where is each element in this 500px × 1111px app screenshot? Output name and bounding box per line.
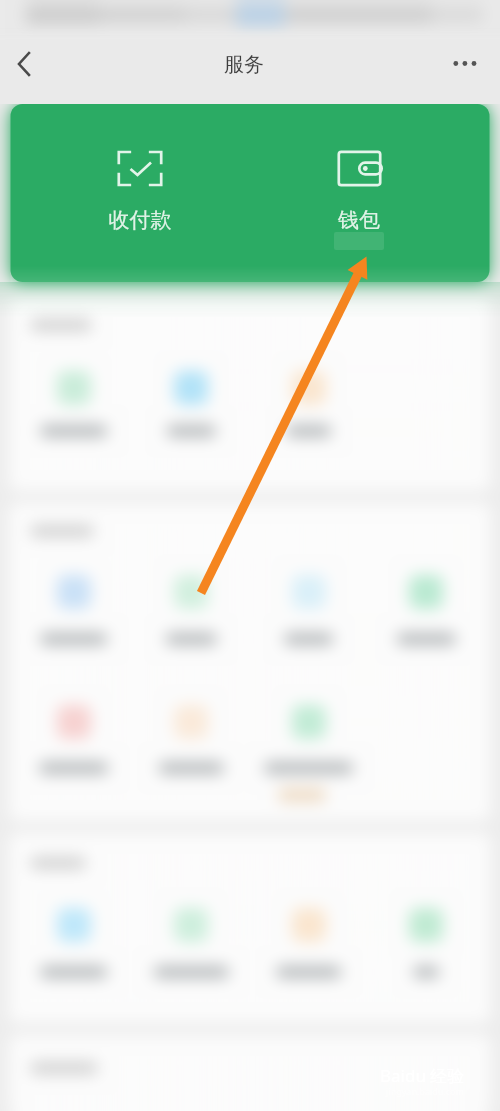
button[interactable]: Service <box>15 895 133 985</box>
button[interactable]: Service <box>368 562 486 652</box>
button[interactable]: Service <box>250 562 368 652</box>
button[interactable]: Service <box>368 895 486 985</box>
button[interactable]: Back <box>4 44 48 86</box>
button[interactable]: 收付款 <box>85 110 195 240</box>
button[interactable]: Service <box>250 692 368 782</box>
button[interactable]: Service <box>133 692 251 782</box>
button[interactable]: Service <box>133 562 251 652</box>
button[interactable]: 钱包 <box>304 110 414 240</box>
button[interactable]: Service <box>250 895 368 985</box>
staticText: 服务 <box>194 52 294 82</box>
button[interactable]: Service <box>250 358 368 448</box>
button[interactable]: Service <box>133 895 251 985</box>
button[interactable]: Service <box>15 692 133 782</box>
button[interactable]: Service <box>15 358 133 448</box>
button[interactable]: Service <box>15 562 133 652</box>
staticText: 收付款 <box>85 207 195 237</box>
button[interactable]: Service <box>133 358 251 448</box>
button[interactable]: More options <box>444 44 490 84</box>
staticText: 钱包 <box>304 207 414 237</box>
